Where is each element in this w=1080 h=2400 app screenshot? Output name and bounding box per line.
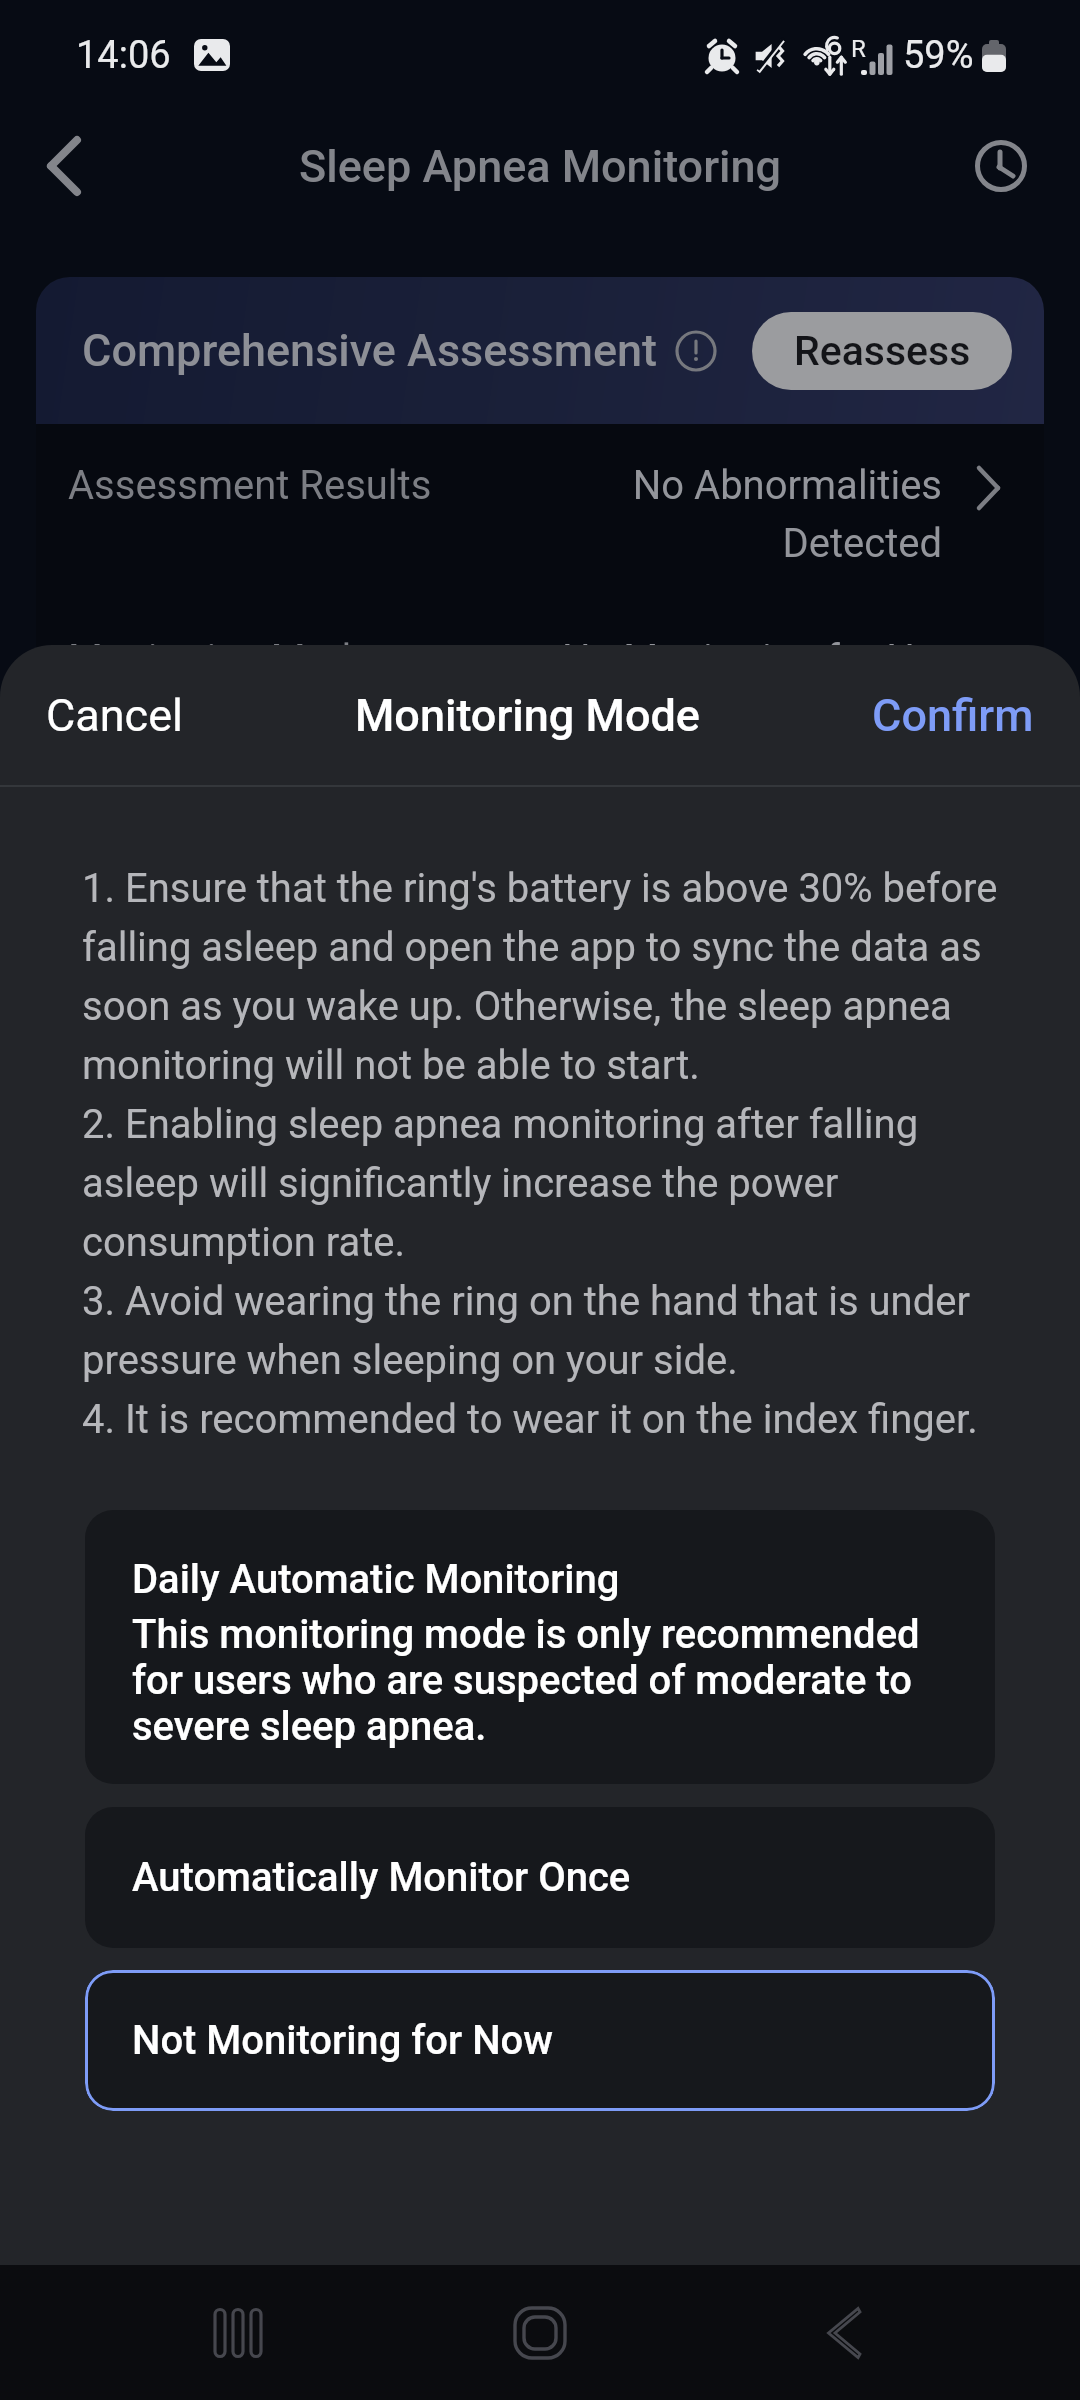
- staticText: Sleep Apnea Monitoring: [299, 140, 782, 193]
- button[interactable]: History: [965, 130, 1037, 202]
- button[interactable]: Home: [480, 2273, 600, 2393]
- staticText: Monitoring Mode: [355, 689, 700, 742]
- staticText: 1. Ensure that the ring's battery is abo…: [82, 865, 1004, 1442]
- staticText: No Abnormalities Detected: [542, 462, 942, 567]
- button[interactable]: Back: [26, 128, 102, 204]
- staticText: Cancel: [46, 689, 183, 742]
- staticText: 59%: [903, 33, 974, 78]
- staticText: Confirm: [872, 689, 1034, 742]
- staticText: Daily Automatic Monitoring: [132, 1556, 620, 1603]
- staticText: Monitoring Mode: [68, 636, 373, 683]
- button[interactable]: Reassess: [752, 312, 1012, 390]
- staticText: R: [851, 35, 866, 63]
- button[interactable]: Automatically Monitor Once: [85, 1807, 995, 1948]
- button[interactable]: Not Monitoring for Now: [85, 1970, 995, 2111]
- button[interactable]: Confirm: [854, 673, 1052, 758]
- button[interactable]: Back: [782, 2273, 902, 2393]
- button[interactable]: Daily Automatic Monitoring: [85, 1510, 995, 1784]
- staticText: Reassess: [794, 327, 971, 375]
- staticText: No Monitoring for Now: [562, 636, 968, 683]
- button[interactable]: Recent apps: [178, 2273, 298, 2393]
- button[interactable]: Assessment Results: [36, 424, 1044, 574]
- staticText: Comprehensive Assessment: [82, 324, 658, 377]
- staticText: This monitoring mode is only recommended…: [132, 1611, 955, 1750]
- button[interactable]: Cancel: [28, 673, 201, 758]
- staticText: Not Monitoring for Now: [132, 2017, 553, 2064]
- staticText: 14:06: [76, 33, 171, 78]
- staticText: Automatically Monitor Once: [132, 1854, 631, 1901]
- staticText: Assessment Results: [68, 462, 432, 509]
